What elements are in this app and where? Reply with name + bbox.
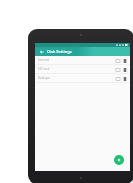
button[interactable]: SD Card [35,65,130,74]
button[interactable]: More options [122,58,127,63]
button[interactable]: Add [114,155,124,165]
button[interactable]: Storage info [115,58,120,63]
button[interactable]: Internal [35,56,130,65]
button[interactable]: Backups [35,74,130,83]
staticText: Backups [38,76,115,80]
staticText: Internal [38,58,115,62]
button[interactable]: Back [38,48,45,55]
button[interactable]: Storage info [115,76,120,81]
button[interactable]: More options [122,76,127,81]
button[interactable]: More options [122,67,127,72]
staticText: Disk Settings [47,49,72,54]
staticText: SD Card [38,67,115,71]
button[interactable]: Storage info [115,67,120,72]
